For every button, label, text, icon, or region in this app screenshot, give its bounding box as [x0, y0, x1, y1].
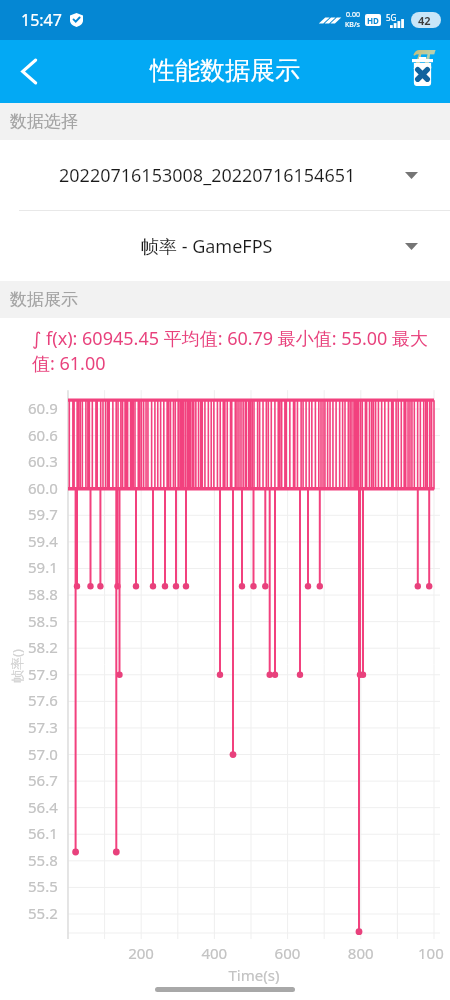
staticText: KB/s: [345, 20, 360, 30]
staticText: ∫ f(x): 60945.45 平均值: 60.79 最小值: 55.00 最…: [32, 326, 434, 375]
staticText: 数据选择: [10, 111, 78, 132]
button[interactable]: Back: [0, 40, 58, 103]
staticText: 0.00: [346, 10, 360, 20]
button[interactable]: 帧率 - GameFPS: [0, 211, 450, 281]
staticText: 20220716153008_20220716154651: [59, 163, 356, 188]
staticText: 数据展示: [10, 289, 78, 310]
staticText: 性能数据展示: [150, 55, 300, 86]
staticText: 5G: [386, 12, 397, 23]
button[interactable]: Delete: [400, 40, 450, 103]
button[interactable]: 20220716153008_20220716154651: [0, 140, 450, 210]
staticText: HD: [367, 15, 379, 26]
staticText: π: [412, 33, 435, 79]
staticText: 42: [418, 13, 431, 28]
staticText: 帧率 - GameFPS: [141, 234, 273, 259]
staticText: 15:47: [21, 9, 62, 31]
